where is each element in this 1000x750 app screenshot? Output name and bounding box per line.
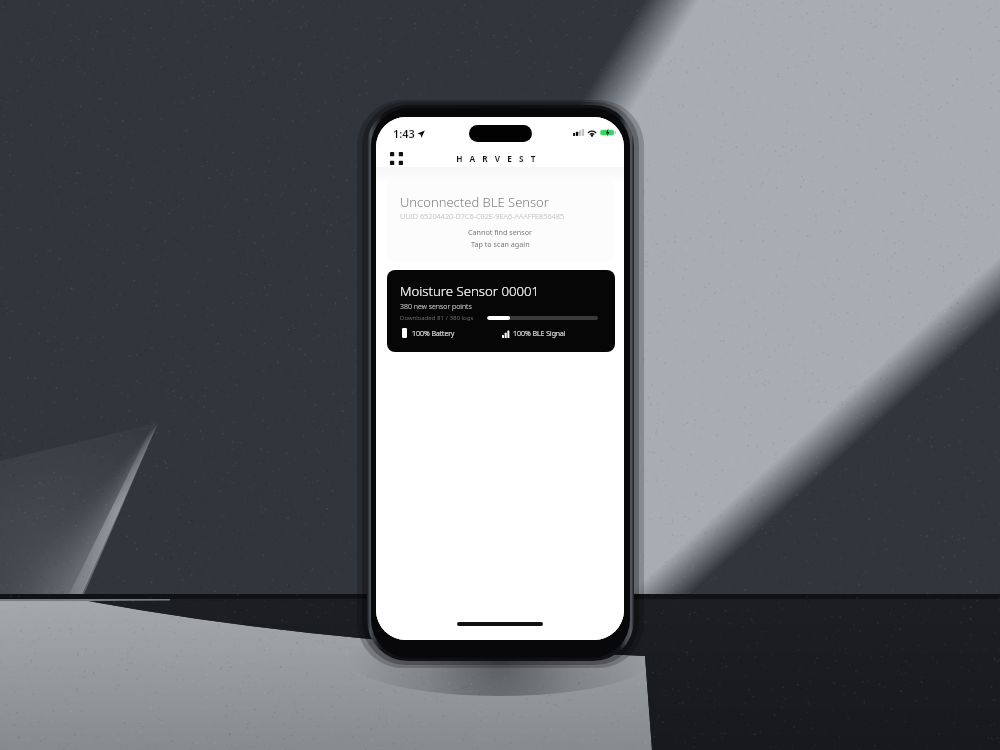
staticText: Cannot find sensor (468, 227, 533, 237)
staticText: 100% Battery (412, 329, 455, 339)
button[interactable]: Moisture Sensor 00001 (387, 270, 615, 352)
staticText: Tap to scan again (471, 239, 530, 249)
staticText: 1:43 (393, 126, 415, 141)
staticText: 100% BLE Signal (513, 329, 566, 339)
staticText: H A R V E S T (376, 153, 621, 164)
staticText: Moisture Sensor 00001 (400, 282, 540, 300)
staticText: Unconnected BLE Sensor (400, 193, 549, 211)
staticText: Downloaded 81 / 380 logs (400, 313, 474, 321)
button[interactable]: Unconnected BLE Sensor (387, 179, 614, 262)
staticText: UUID 65204420-D7C6-C02E-9EA6-AAAFFE85648… (400, 211, 565, 221)
button[interactable]: Apps (383, 145, 409, 171)
staticText: 380 new sensor points (400, 302, 472, 312)
